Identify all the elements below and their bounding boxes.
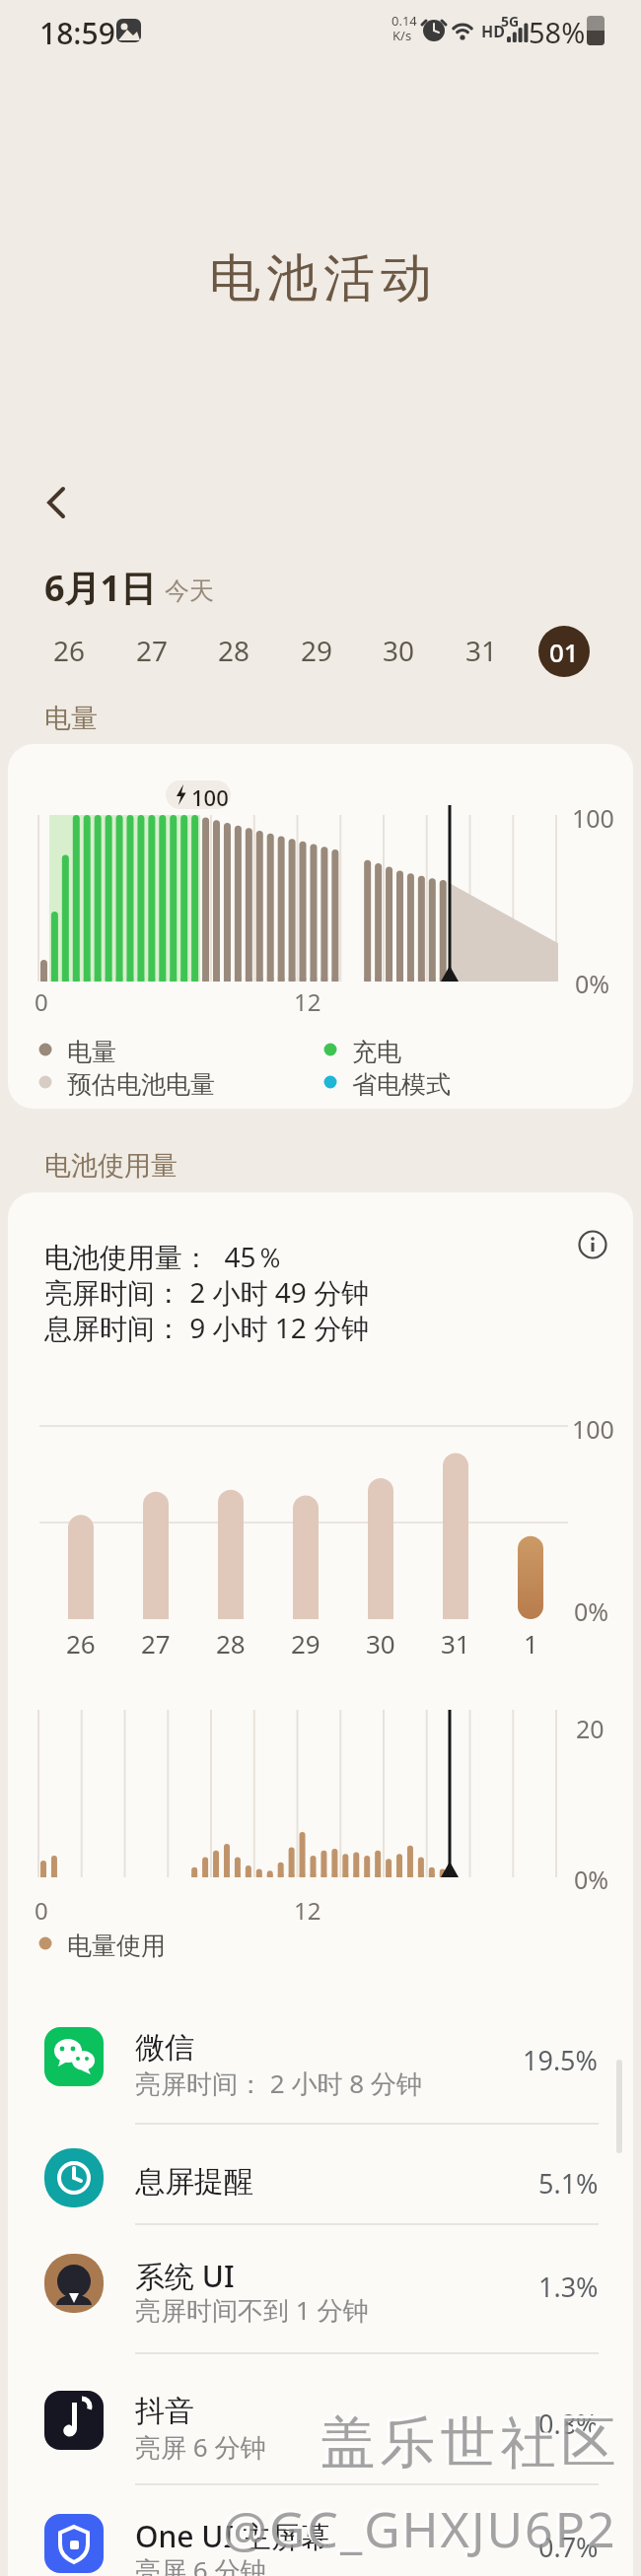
button[interactable]: 27 xyxy=(122,623,181,678)
button[interactable]: 28 xyxy=(204,623,263,678)
staticText: 18:59 xyxy=(39,13,115,53)
staticText: 5G xyxy=(501,12,520,31)
staticText: 0% xyxy=(575,967,610,1000)
staticText: K/s xyxy=(392,27,412,44)
staticText: 电池使用量： 45％ xyxy=(44,1238,284,1275)
staticText: 盖乐世社区 xyxy=(315,2406,615,2475)
staticText: 0 xyxy=(35,985,48,1018)
staticText: 电量 xyxy=(44,702,98,735)
staticText: 30 xyxy=(383,632,415,669)
staticText: 微信 xyxy=(135,2029,194,2067)
staticText: @GC_GHXJU6P2 xyxy=(220,2492,614,2559)
staticText: 电池活动 xyxy=(206,246,435,311)
button[interactable]: 26 xyxy=(39,623,99,678)
staticText: 30 xyxy=(366,1626,395,1661)
staticText: 12 xyxy=(294,985,321,1018)
staticText: 0.7% xyxy=(538,2529,599,2565)
button[interactable] xyxy=(8,2499,633,2576)
staticText: 息屏提醒 xyxy=(135,2163,253,2201)
staticText: HD xyxy=(481,21,505,42)
staticText: 5.1% xyxy=(538,2165,599,2202)
staticText: 预估电池电量 xyxy=(67,1069,215,1100)
staticText: 电池使用量 xyxy=(44,1149,178,1183)
button[interactable] xyxy=(8,2012,633,2101)
staticText: 亮屏时间不到 1 分钟 xyxy=(135,2292,369,2328)
button[interactable] xyxy=(30,471,85,526)
staticText: 亮屏 6 分钟 xyxy=(135,2429,266,2465)
staticText: 1.3% xyxy=(538,2269,599,2305)
staticText: 省电模式 xyxy=(352,1069,451,1100)
staticText: 亮屏 6 分钟 xyxy=(135,2552,266,2576)
staticText: 27 xyxy=(141,1626,171,1661)
staticText: 0% xyxy=(574,1863,609,1896)
staticText: @GC_GHXJU6P2 xyxy=(223,2495,617,2562)
staticText: 电量使用 xyxy=(67,1931,166,1961)
staticText: 12 xyxy=(294,1894,321,1927)
staticText: 盖乐世社区 xyxy=(318,2408,618,2478)
staticText: 29 xyxy=(291,1626,320,1661)
staticText: 19.5% xyxy=(523,2042,599,2078)
staticText: 100 xyxy=(572,1412,614,1446)
staticText: 0 xyxy=(35,1894,48,1927)
staticText: 28 xyxy=(218,632,250,669)
button[interactable]: 31 xyxy=(452,623,511,678)
staticText: One UI 主屏幕 xyxy=(135,2516,330,2556)
staticText: 01 xyxy=(549,635,579,669)
staticText: 今天 xyxy=(165,576,214,606)
staticText: 亮屏时间： 2 小时 8 分钟 xyxy=(135,2066,422,2101)
staticText: 0% xyxy=(574,1594,609,1628)
staticText: 系统 UI xyxy=(135,2256,235,2296)
staticText: 31 xyxy=(441,1626,470,1661)
staticText: 电量 xyxy=(67,1037,116,1067)
button[interactable] xyxy=(576,1228,609,1261)
staticText: 6月1日 xyxy=(44,564,157,612)
button[interactable] xyxy=(8,2134,633,2222)
staticText: 亮屏时间： 2 小时 49 分钟 xyxy=(44,1273,370,1311)
staticText: 20 xyxy=(576,1712,605,1745)
staticText: 26 xyxy=(53,632,86,669)
staticText: 31 xyxy=(465,632,498,669)
button[interactable]: 29 xyxy=(287,623,346,678)
button[interactable] xyxy=(8,2376,633,2465)
staticText: 充电 xyxy=(352,1037,401,1067)
staticText: 58% xyxy=(529,13,586,51)
button[interactable]: 30 xyxy=(369,623,428,678)
staticText: 29 xyxy=(301,632,333,669)
staticText: 抖音 xyxy=(135,2393,194,2430)
staticText: 100 xyxy=(191,782,229,812)
staticText: 1 xyxy=(524,1626,538,1661)
staticText: 27 xyxy=(136,632,169,669)
button[interactable]: 01 xyxy=(538,626,590,677)
staticText: 息屏时间： 9 小时 12 分钟 xyxy=(44,1309,370,1346)
staticText: 100 xyxy=(572,801,614,835)
staticText: 28 xyxy=(216,1626,246,1661)
staticText: 0.14 xyxy=(392,12,417,30)
staticText: 0.8% xyxy=(538,2406,599,2442)
button[interactable] xyxy=(8,2239,633,2328)
staticText: 26 xyxy=(66,1626,96,1661)
